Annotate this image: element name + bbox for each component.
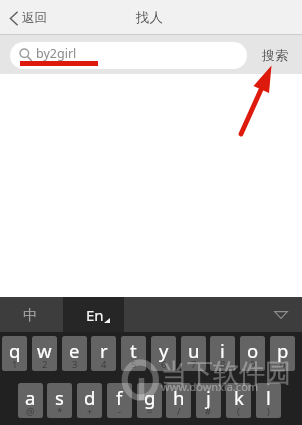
button[interactable]: s [47, 383, 72, 418]
button[interactable]: by2girl [10, 42, 247, 69]
staticText: 当下软件园 [161, 357, 291, 390]
staticText: i [220, 338, 225, 363]
button[interactable]: Hide keyboard [269, 303, 293, 327]
staticText: 中 [23, 306, 38, 324]
button[interactable]: d [77, 383, 102, 418]
staticText: o [247, 338, 259, 363]
staticText: 7 [191, 358, 197, 371]
staticText: u [188, 338, 200, 363]
button[interactable]: o [240, 336, 265, 371]
staticText: j [206, 385, 211, 410]
staticText: 4 [101, 358, 107, 371]
staticText: - [118, 405, 122, 418]
button[interactable]: k [226, 383, 251, 418]
staticText: f [116, 385, 123, 410]
staticText: @ [26, 405, 35, 418]
staticText: * [57, 405, 63, 418]
button[interactable]: 中 [0, 297, 63, 332]
staticText: w [37, 338, 52, 363]
staticText: 3 [72, 358, 78, 371]
staticText: = [147, 405, 153, 418]
button[interactable]: t [121, 336, 146, 371]
button[interactable]: 搜索 [248, 41, 302, 69]
staticText: q [9, 338, 21, 363]
staticText: 5 [131, 358, 137, 371]
staticText: # [205, 405, 212, 418]
staticText: ) [267, 405, 270, 418]
staticText: www.downxia.com [161, 379, 259, 394]
staticText: p [277, 338, 289, 363]
staticText: 6 [161, 358, 167, 371]
staticText: k [234, 385, 244, 410]
staticText: e [69, 338, 80, 363]
staticText: ( [237, 405, 240, 418]
button[interactable]: q [2, 336, 27, 371]
button[interactable]: i [210, 336, 235, 371]
staticText: s [55, 385, 64, 410]
button[interactable]: g [137, 383, 162, 418]
staticText: h [173, 385, 185, 410]
staticText: 2 [42, 358, 48, 371]
staticText: g [144, 385, 156, 410]
staticText: / [177, 405, 181, 418]
staticText: by2girl [36, 45, 77, 62]
button[interactable]: p [270, 336, 295, 371]
button[interactable]: 返回 [0, 4, 57, 32]
staticText: y [159, 338, 169, 363]
staticText: 9 [250, 358, 256, 371]
button[interactable]: h [166, 383, 191, 418]
button[interactable]: y [151, 336, 176, 371]
staticText: a [25, 385, 36, 410]
staticText: d [84, 385, 96, 410]
staticText: 8 [220, 358, 226, 371]
staticText: En [86, 305, 104, 325]
staticText: l [266, 385, 271, 410]
staticText: 返回 [22, 10, 47, 26]
button[interactable]: l [256, 383, 281, 418]
staticText: 1 [12, 358, 18, 371]
button[interactable]: r [91, 336, 116, 371]
staticText: + [87, 405, 93, 418]
staticText: t [130, 338, 137, 363]
button[interactable]: w [32, 336, 57, 371]
button[interactable]: e [62, 336, 87, 371]
staticText: 找人 [136, 9, 163, 26]
button[interactable]: f [107, 383, 132, 418]
button[interactable]: u [181, 336, 206, 371]
button[interactable]: En [63, 297, 124, 332]
button[interactable]: j [196, 383, 221, 418]
staticText: r [100, 338, 108, 363]
staticText: 0 [280, 358, 286, 371]
button[interactable]: a [18, 383, 43, 418]
